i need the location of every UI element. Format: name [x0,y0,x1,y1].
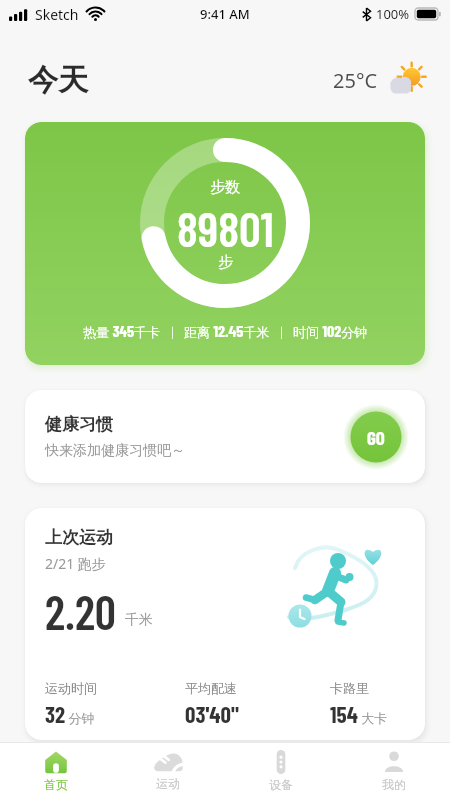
button[interactable]: 我的 [337,743,450,800]
staticText: 我的 [382,777,406,792]
staticText: 卡路里 [330,680,369,696]
staticText: 今天 [28,61,88,99]
staticText: 03'40" [185,700,239,728]
staticText: 100% [376,5,410,23]
staticText: 健康习惯 [45,414,113,435]
staticText: 快来添加健康习惯吧～ [45,442,185,460]
staticText: 平均配速 [185,680,237,696]
button[interactable]: 步数 [25,122,425,365]
staticText: 25°C [333,67,378,94]
staticText: 9:41 AM [200,5,250,23]
button[interactable]: 首页 [0,743,112,800]
staticText: Sketch [35,5,79,24]
staticText: 距离 12.45千米 [184,321,270,341]
button[interactable]: 设备 [224,743,337,800]
staticText: GO [367,426,385,449]
staticText: 热量 345千卡 [83,321,161,341]
staticText: ❘ [270,323,293,339]
staticText: 2/21 跑步 [45,554,106,573]
button[interactable]: 上次运动 [25,508,425,740]
staticText: 步数 [210,178,240,197]
staticText: 时间 102分钟 [293,321,368,341]
button[interactable]: GO [343,404,409,470]
staticText: ❘ [161,323,184,339]
button[interactable]: 运动 [112,743,224,800]
button[interactable]: 健康习惯 [25,390,425,483]
staticText: 2.20 [45,583,117,639]
staticText: 32 分钟 [45,700,95,728]
staticText: 154 大卡 [330,700,388,728]
staticText: 运动 [156,776,180,791]
staticText: 上次运动 [45,527,113,548]
staticText: 89801 [177,199,274,257]
staticText: 设备 [269,777,293,792]
staticText: 首页 [44,777,68,792]
staticText: 运动时间 [45,680,97,696]
staticText: 千米 [125,611,153,629]
staticText: 步 [218,253,233,272]
